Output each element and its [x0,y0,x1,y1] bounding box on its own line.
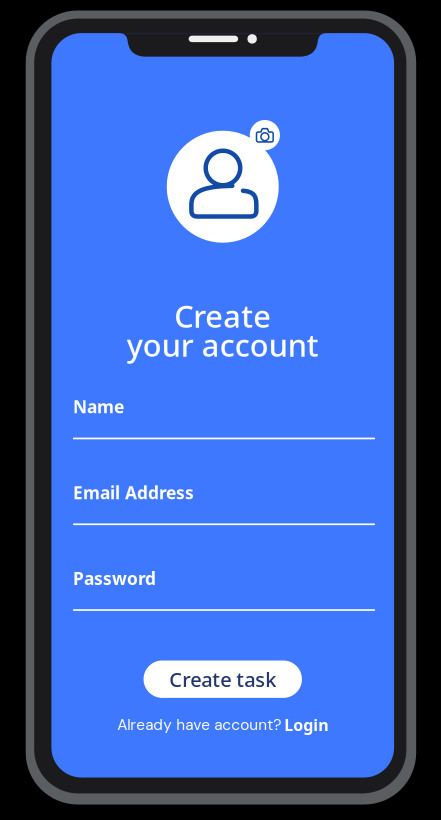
staticText: Create task [169,666,276,693]
button[interactable]: Password [73,569,375,611]
staticText: Already have account? [117,715,281,735]
staticText: Login [284,714,328,736]
button[interactable]: Email Address [73,483,375,525]
button[interactable]: Name [73,398,375,439]
staticText: Name [73,395,124,418]
staticText: Password [73,566,156,590]
button[interactable]: Already have account? [117,714,328,736]
staticText: Email Address [73,481,194,504]
staticText: Create [174,295,271,337]
button[interactable]: Change profile photo [249,119,281,151]
staticText: your account [127,324,319,366]
button[interactable]: Create task [144,660,302,698]
